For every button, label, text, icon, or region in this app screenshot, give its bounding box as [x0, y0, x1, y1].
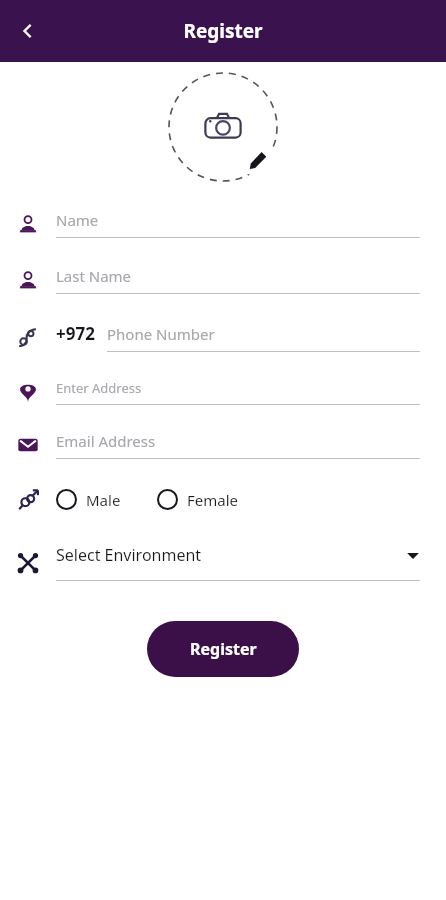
button[interactable]: Name — [0, 210, 446, 238]
button[interactable]: Email Address — [0, 431, 446, 459]
button[interactable]: Female — [157, 483, 239, 516]
staticText: Female — [187, 490, 239, 510]
button[interactable]: +972 — [0, 322, 446, 353]
staticText: Register — [190, 638, 257, 660]
staticText: Phone Number — [107, 324, 215, 344]
staticText: Register — [183, 18, 263, 44]
button[interactable]: Male — [56, 483, 121, 516]
button[interactable]: Enter Address — [0, 379, 446, 405]
staticText: Email Address — [56, 431, 156, 451]
staticText: Name — [56, 210, 99, 230]
button[interactable]: Add profile photo — [167, 71, 279, 183]
button[interactable]: Select Environment — [0, 544, 446, 581]
button[interactable]: Back — [6, 9, 50, 53]
button[interactable]: Edit photo — [241, 143, 275, 177]
staticText: Enter Address — [56, 379, 142, 397]
staticText: Last Name — [56, 266, 132, 286]
button[interactable]: Last Name — [0, 266, 446, 294]
staticText: Select Environment — [56, 544, 202, 566]
staticText: +972 — [56, 322, 95, 345]
button[interactable]: Register — [147, 621, 299, 677]
staticText: Male — [86, 490, 121, 510]
